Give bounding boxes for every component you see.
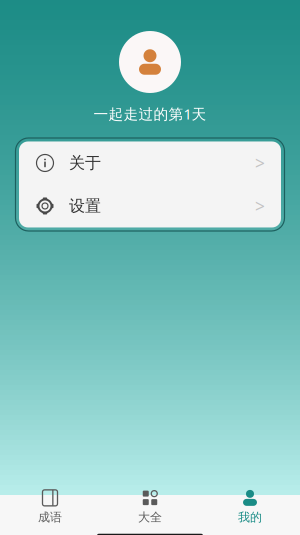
button[interactable]: 关于 [19, 141, 281, 184]
staticText: > [255, 194, 265, 217]
staticText: 大全 [138, 510, 162, 525]
button[interactable]: 设置 [19, 184, 281, 227]
staticText: > [255, 151, 265, 174]
button[interactable]: 大全 [100, 487, 200, 527]
staticText: 成语 [38, 510, 62, 525]
staticText: 设置 [69, 196, 101, 216]
button[interactable]: 成语 [0, 487, 100, 527]
staticText: 关于 [69, 153, 101, 173]
staticText: 我的 [238, 510, 262, 525]
button[interactable]: 我的 [200, 487, 300, 527]
staticText: 一起走过的第1天 [93, 104, 206, 123]
